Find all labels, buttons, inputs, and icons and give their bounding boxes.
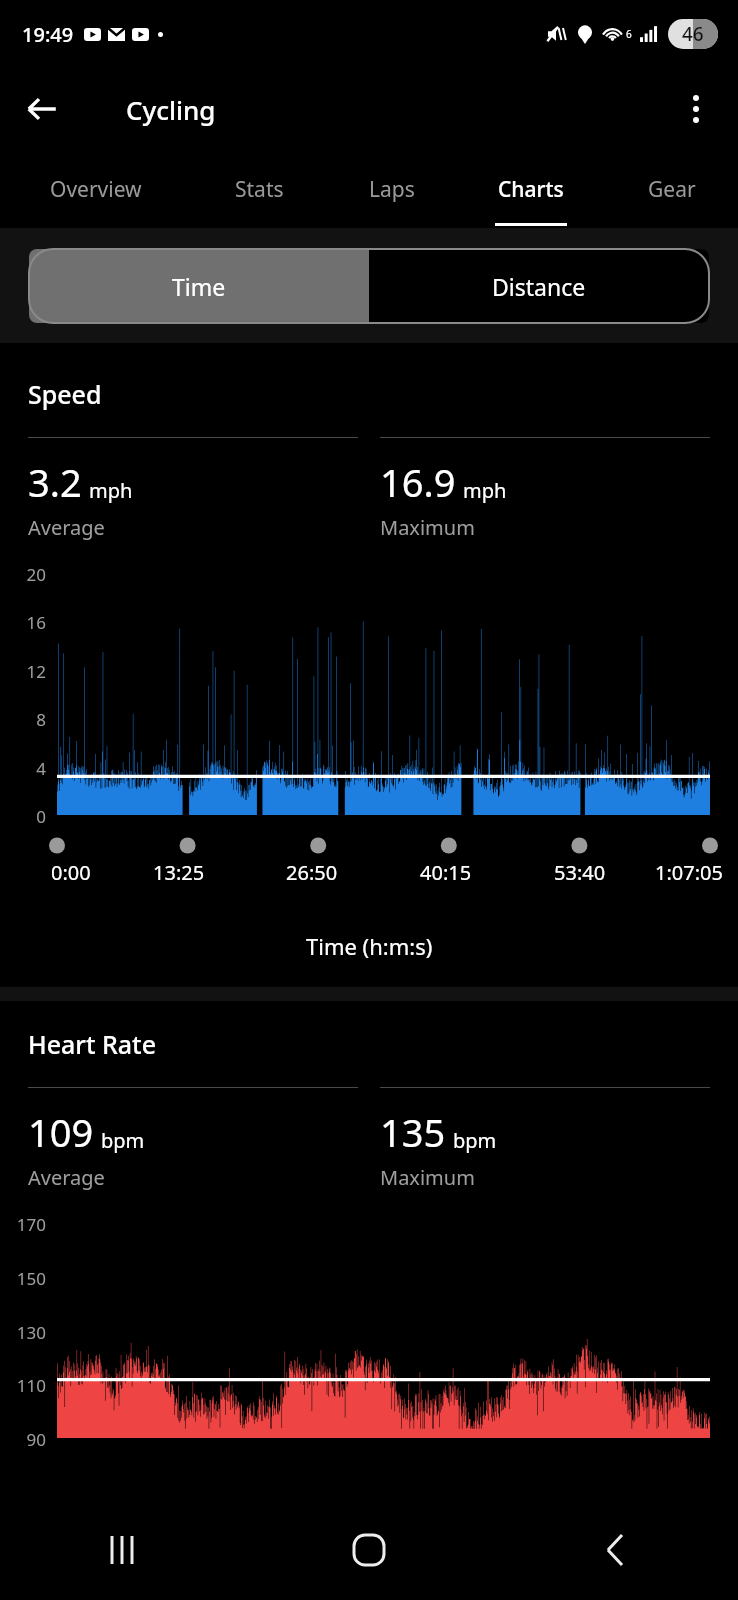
staticText: Average: [28, 1164, 105, 1191]
staticText: Distance: [492, 271, 586, 302]
staticText: Average: [28, 514, 105, 541]
staticText: 90: [26, 1428, 46, 1448]
staticText: 53:40: [554, 859, 606, 886]
staticText: 110: [16, 1374, 46, 1394]
button[interactable]: Time: [29, 249, 369, 323]
staticText: Cycling: [126, 92, 216, 127]
button[interactable]: Back: [12, 79, 72, 139]
staticText: Time (h:m:s): [306, 931, 433, 961]
staticText: 1:07:05: [655, 859, 723, 886]
staticText: 20: [26, 563, 46, 583]
staticText: 6: [626, 27, 632, 41]
staticText: Speed: [28, 377, 102, 411]
button[interactable]: Laps: [327, 150, 457, 228]
staticText: Laps: [369, 175, 415, 204]
staticText: Stats: [235, 175, 284, 204]
staticText: Overview: [50, 175, 142, 204]
staticText: 130: [16, 1321, 46, 1341]
button[interactable]: Distance: [369, 249, 709, 323]
staticText: 16.9: [380, 456, 456, 508]
staticText: 170: [16, 1213, 46, 1233]
staticText: 150: [16, 1267, 46, 1287]
button[interactable]: Home: [246, 1500, 492, 1600]
staticText: 26:50: [286, 859, 338, 886]
staticText: Time: [172, 271, 226, 302]
staticText: mph: [89, 477, 133, 504]
staticText: mph: [463, 477, 507, 504]
staticText: 135: [380, 1106, 446, 1158]
staticText: Gear: [648, 175, 696, 204]
staticText: 13:25: [153, 859, 205, 886]
staticText: 0: [36, 805, 46, 825]
staticText: 19:49: [22, 21, 74, 48]
staticText: bpm: [453, 1127, 497, 1154]
staticText: 16: [26, 611, 46, 631]
staticText: Maximum: [380, 1164, 475, 1191]
staticText: 3.2: [28, 456, 82, 508]
button[interactable]: Gear: [605, 150, 738, 228]
staticText: 4: [36, 757, 46, 777]
staticText: Maximum: [380, 514, 475, 541]
staticText: 12: [26, 660, 46, 680]
button[interactable]: Overview: [0, 150, 191, 228]
button[interactable]: More options: [666, 79, 726, 139]
staticText: 0:00: [51, 859, 91, 886]
staticText: 8: [36, 708, 46, 728]
staticText: Heart Rate: [28, 1027, 157, 1061]
button[interactable]: Recent apps: [0, 1500, 246, 1600]
staticText: bpm: [101, 1127, 145, 1154]
staticText: Charts: [498, 175, 564, 204]
button[interactable]: Stats: [191, 150, 327, 228]
staticText: 46: [682, 21, 704, 47]
button[interactable]: Back: [492, 1500, 738, 1600]
staticText: 40:15: [420, 859, 472, 886]
staticText: 109: [28, 1106, 94, 1158]
button[interactable]: Charts: [457, 150, 605, 228]
